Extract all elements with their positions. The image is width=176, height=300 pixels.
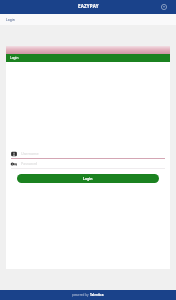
staticText: Talentica bbox=[90, 293, 104, 297]
staticText: powered by bbox=[72, 293, 90, 297]
button[interactable]: Account bbox=[158, 1, 170, 13]
button[interactable]: Login bbox=[6, 17, 15, 21]
staticText: Login bbox=[10, 56, 19, 60]
staticText: Login bbox=[83, 176, 93, 181]
staticText: Username bbox=[21, 151, 39, 156]
button[interactable]: Username bbox=[11, 150, 165, 157]
staticText: EAZYPAY bbox=[78, 3, 99, 9]
staticText: Password bbox=[21, 161, 38, 166]
button[interactable]: Login bbox=[17, 174, 159, 183]
button[interactable]: Password bbox=[11, 160, 165, 167]
